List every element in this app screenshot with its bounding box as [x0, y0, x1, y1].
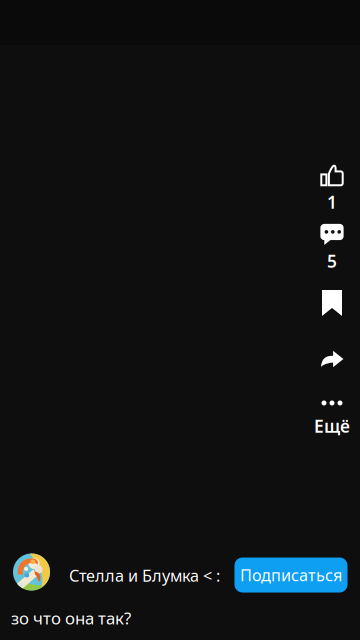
staticText: Ещё — [314, 414, 350, 437]
staticText: 1 — [327, 190, 337, 213]
staticText: 5 — [327, 249, 337, 272]
button[interactable]: Комментарии — [308, 223, 356, 272]
staticText: Стелла и Блумка < : — [69, 564, 220, 587]
button[interactable]: Подписаться — [234, 557, 347, 592]
button[interactable]: В закладки — [308, 290, 356, 316]
button[interactable]: Стелла и Блумка < : — [13, 553, 225, 591]
button[interactable]: Нравится — [308, 164, 356, 213]
button[interactable]: Поделиться — [308, 350, 356, 368]
button[interactable]: Ещё — [308, 400, 356, 437]
staticText: Подписаться — [240, 564, 342, 586]
staticText: зо что она так? — [11, 607, 131, 629]
